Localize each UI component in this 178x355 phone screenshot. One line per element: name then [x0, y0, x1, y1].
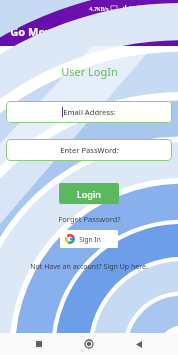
- button[interactable]: Recent apps: [28, 333, 50, 355]
- button[interactable]: Sign In: [60, 230, 118, 248]
- staticText: Go Movies: [10, 24, 67, 39]
- staticText: User LogIn: [61, 64, 118, 79]
- staticText: Sign In: [79, 235, 101, 244]
- staticText: Forget Password?: [58, 214, 121, 224]
- button[interactable]: Login: [59, 183, 119, 204]
- staticText: 4G: [128, 5, 135, 12]
- button[interactable]: Forget Password?: [54, 213, 125, 225]
- button[interactable]: Back: [128, 333, 150, 355]
- staticText: 4.7KB/s: [89, 5, 109, 12]
- button[interactable]: Email Address:: [6, 101, 172, 123]
- staticText: Enter PassWord:: [60, 145, 119, 155]
- staticText: Email Address:: [63, 107, 116, 117]
- button[interactable]: Home: [78, 333, 100, 355]
- staticText: Not Have an account? Sign Up here.: [30, 262, 148, 272]
- button[interactable]: Not Have an account? Sign Up here.: [26, 261, 152, 273]
- button[interactable]: Enter PassWord:: [6, 139, 172, 161]
- staticText: Login: [77, 188, 101, 200]
